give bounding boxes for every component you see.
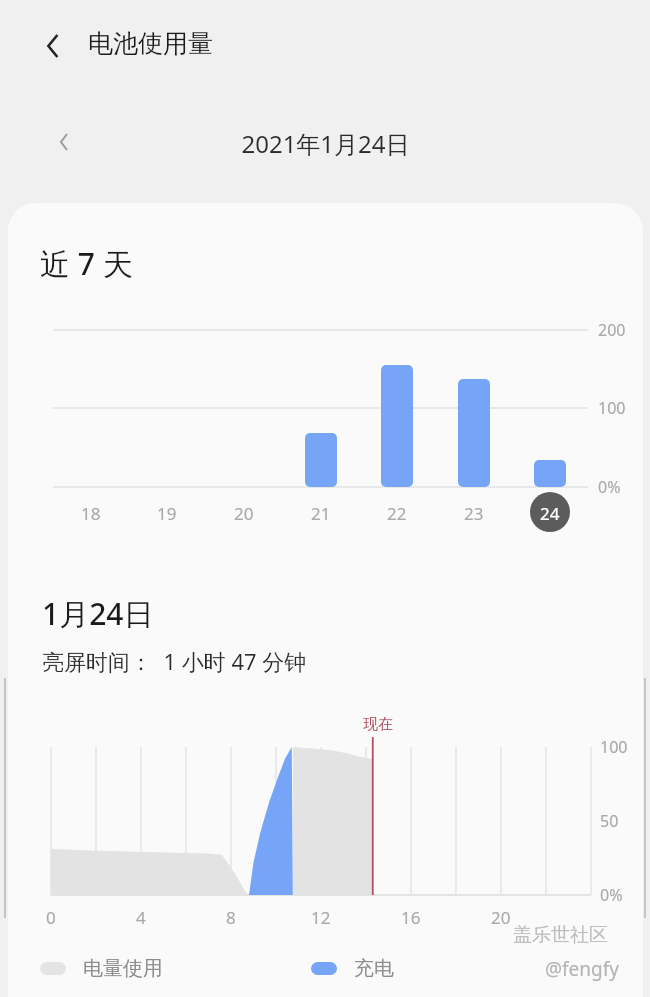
staticText: 50 (600, 810, 619, 832)
staticText: 200 (598, 319, 626, 341)
staticText: 12 (311, 906, 331, 929)
staticText: 4 (136, 906, 146, 929)
button[interactable]: 23 (452, 498, 496, 528)
staticText: 18 (81, 502, 101, 525)
staticText: 8 (226, 906, 236, 929)
staticText: 电量使用 (83, 956, 163, 981)
staticText: 16 (401, 906, 421, 929)
button[interactable]: 21 (299, 498, 343, 528)
button[interactable]: 19 (145, 498, 189, 528)
button[interactable]: 22 (375, 498, 419, 528)
button[interactable]: Back (30, 24, 74, 68)
button[interactable]: 24 (528, 498, 572, 528)
staticText: 2021年1月24日 (241, 127, 410, 160)
staticText: 19 (157, 502, 177, 525)
staticText: 电池使用量 (88, 28, 213, 59)
staticText: 0 (46, 906, 56, 929)
button[interactable]: Previous day (42, 120, 86, 164)
staticText: 20 (234, 502, 254, 525)
staticText: 23 (464, 502, 484, 525)
button[interactable]: 2021年1月24日 (125, 122, 525, 164)
staticText: 0% (600, 884, 623, 906)
button[interactable]: 18 (69, 498, 113, 528)
staticText: 0% (598, 476, 621, 498)
staticText: 亮屏时间： 1 小时 47 分钟 (42, 646, 307, 676)
staticText: 充电 (354, 956, 394, 981)
staticText: 100 (598, 397, 626, 419)
staticText: 现在 (363, 715, 393, 734)
staticText: @fengfy (545, 956, 619, 982)
staticText: 盖乐世社区 (513, 923, 608, 947)
staticText: 20 (491, 906, 511, 929)
staticText: 21 (311, 502, 331, 525)
staticText: 100 (600, 736, 628, 758)
button[interactable]: 20 (222, 498, 266, 528)
staticText: 24 (540, 502, 560, 525)
staticText: 22 (387, 502, 407, 525)
staticText: 近 7 天 (40, 243, 133, 284)
staticText: 1月24日 (42, 593, 154, 634)
